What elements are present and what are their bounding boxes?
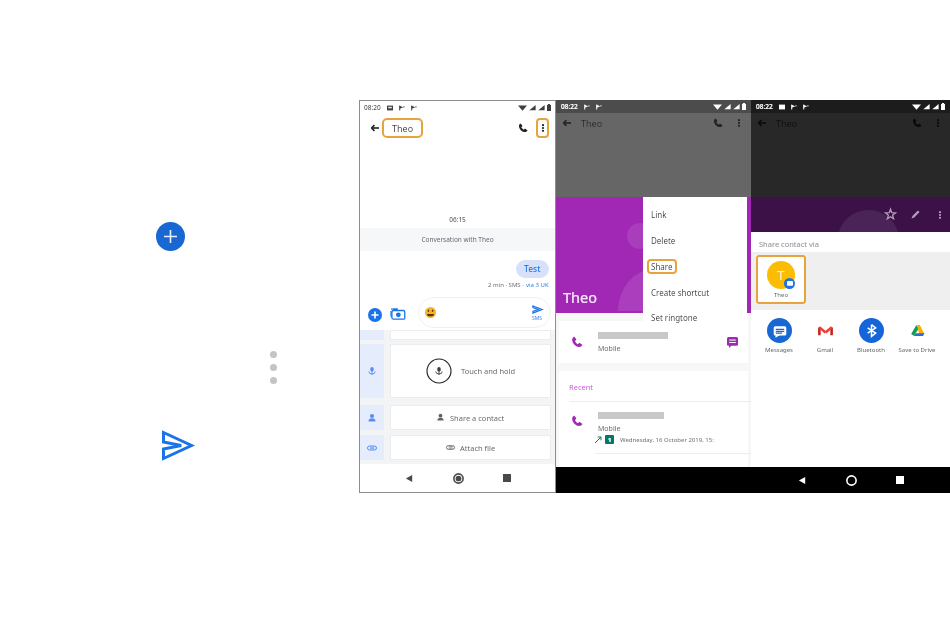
staticText: Theo — [563, 287, 597, 307]
staticText: Test — [524, 263, 541, 275]
staticText: Share contact via — [759, 239, 819, 249]
button[interactable]: More options — [536, 118, 549, 138]
button[interactable]: Share a contact — [390, 405, 551, 430]
button[interactable]: Mobile — [559, 321, 748, 363]
staticText: Mobile — [598, 424, 621, 434]
button[interactable]: Delete — [651, 227, 739, 253]
staticText: Share a contact — [450, 413, 505, 423]
button[interactable]: Create shortcut — [651, 279, 739, 305]
button[interactable]: Back — [370, 123, 380, 133]
button[interactable]: More options — [734, 118, 744, 128]
staticText: Delete — [651, 235, 676, 246]
button[interactable]: Back — [757, 118, 767, 128]
button[interactable]: Send message — [727, 337, 738, 348]
button[interactable]: More options — [935, 210, 945, 220]
button[interactable]: 1 — [595, 435, 714, 444]
button[interactable]: Call — [912, 118, 922, 128]
staticText: Wednesday, 16 October 2019, 15: — [620, 436, 714, 444]
button[interactable]: Share — [651, 253, 739, 279]
staticText: 08:20 — [364, 103, 381, 112]
button[interactable]: Messages — [756, 318, 802, 354]
staticText: Save to Drive — [894, 346, 940, 354]
staticText: Link — [651, 209, 667, 220]
button[interactable]: Save to Drive — [894, 318, 940, 354]
staticText: Theo — [776, 117, 798, 129]
staticText: SMS — [532, 315, 543, 322]
staticText: Touch and hold — [461, 366, 516, 376]
staticText: Share — [651, 261, 673, 272]
button[interactable]: Test — [524, 260, 541, 278]
button[interactable]: Back — [405, 474, 414, 483]
button[interactable]: Add — [368, 308, 382, 322]
button[interactable]: Favorite — [885, 209, 896, 220]
staticText: T — [777, 266, 785, 284]
button[interactable] — [390, 330, 551, 340]
staticText: Messages — [756, 346, 802, 354]
button[interactable]: Attach file — [390, 435, 551, 460]
staticText: Recent — [569, 382, 594, 392]
button[interactable]: Camera — [391, 306, 406, 321]
button[interactable]: Home — [846, 475, 857, 486]
staticText: 2 min · SMS · — [488, 281, 526, 289]
staticText: 08:22 — [561, 102, 578, 111]
button[interactable]: Add — [156, 222, 185, 251]
button[interactable]: Call — [713, 118, 723, 128]
button[interactable]: Send — [162, 431, 193, 460]
staticText: 06:15 — [359, 215, 556, 224]
staticText: Theo — [581, 117, 603, 129]
staticText: 1 — [608, 436, 612, 444]
staticText: Theo — [774, 291, 789, 299]
button[interactable]: Call — [518, 123, 528, 133]
staticText: Mobile — [598, 344, 621, 354]
staticText: Attach file — [460, 443, 496, 453]
button[interactable]: More options — [270, 351, 277, 384]
button[interactable]: Theo — [382, 118, 423, 138]
button[interactable]: Link — [651, 201, 739, 227]
staticText: 08:22 — [756, 102, 773, 111]
staticText: via 3 UK — [526, 281, 549, 289]
button[interactable]: Gmail — [802, 318, 848, 354]
button[interactable]: Edit — [910, 209, 921, 220]
staticText: Bluetooth — [848, 346, 894, 354]
staticText: Theo — [392, 122, 414, 134]
button[interactable]: More options — [933, 118, 943, 128]
button[interactable]: T — [756, 255, 806, 304]
staticText: Conversation with Theo — [359, 235, 556, 244]
button[interactable]: Home — [453, 473, 464, 484]
button[interactable]: Set ringtone — [651, 305, 739, 329]
button[interactable]: Touch and hold — [390, 344, 551, 398]
staticText: Create shortcut — [651, 287, 710, 298]
button[interactable]: SMS — [425, 297, 543, 328]
button[interactable]: Bluetooth — [848, 318, 894, 354]
staticText: Gmail — [802, 346, 848, 354]
button[interactable]: Back — [562, 118, 572, 128]
button[interactable]: Back — [798, 476, 807, 485]
staticText: Set ringtone — [651, 312, 698, 323]
